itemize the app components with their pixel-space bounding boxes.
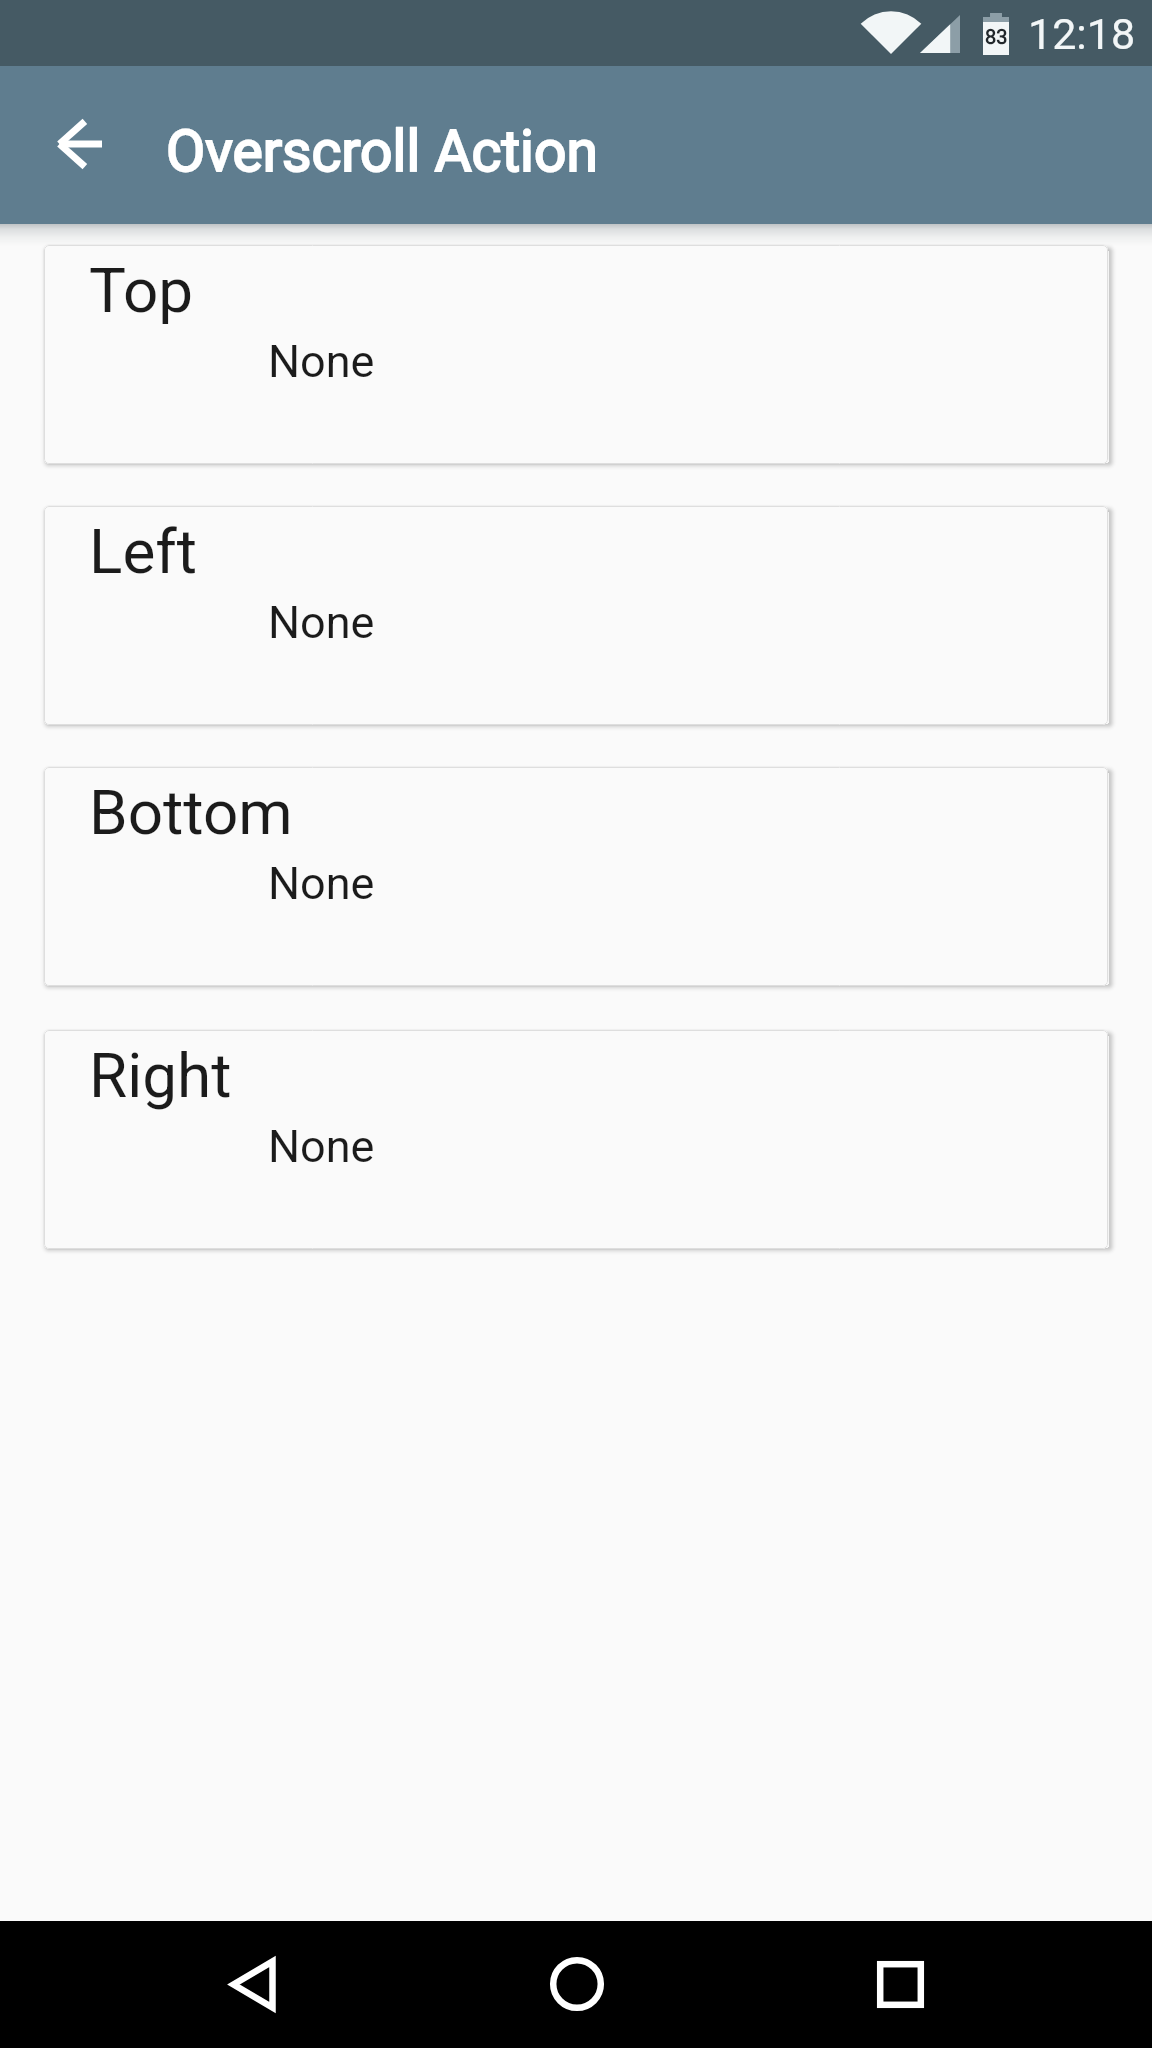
- button[interactable]: Home: [529, 1936, 625, 2032]
- staticText: Bottom: [89, 776, 293, 849]
- staticText: Top: [89, 254, 194, 327]
- button[interactable]: Left: [44, 506, 1108, 725]
- staticText: Overscroll Action: [166, 118, 598, 185]
- button[interactable]: Navigate up: [31, 96, 127, 192]
- button[interactable]: Recent apps: [852, 1936, 948, 2032]
- staticText: None: [268, 335, 375, 388]
- button[interactable]: Top: [44, 245, 1108, 464]
- staticText: 12:18: [1028, 9, 1136, 59]
- staticText: None: [268, 596, 375, 649]
- staticText: Right: [89, 1039, 232, 1112]
- staticText: None: [268, 1120, 375, 1173]
- button[interactable]: Back: [205, 1936, 301, 2032]
- staticText: 83: [985, 25, 1008, 48]
- staticText: None: [268, 857, 375, 910]
- button[interactable]: Right: [44, 1030, 1108, 1249]
- staticText: Left: [89, 515, 198, 588]
- button[interactable]: Bottom: [44, 767, 1108, 986]
